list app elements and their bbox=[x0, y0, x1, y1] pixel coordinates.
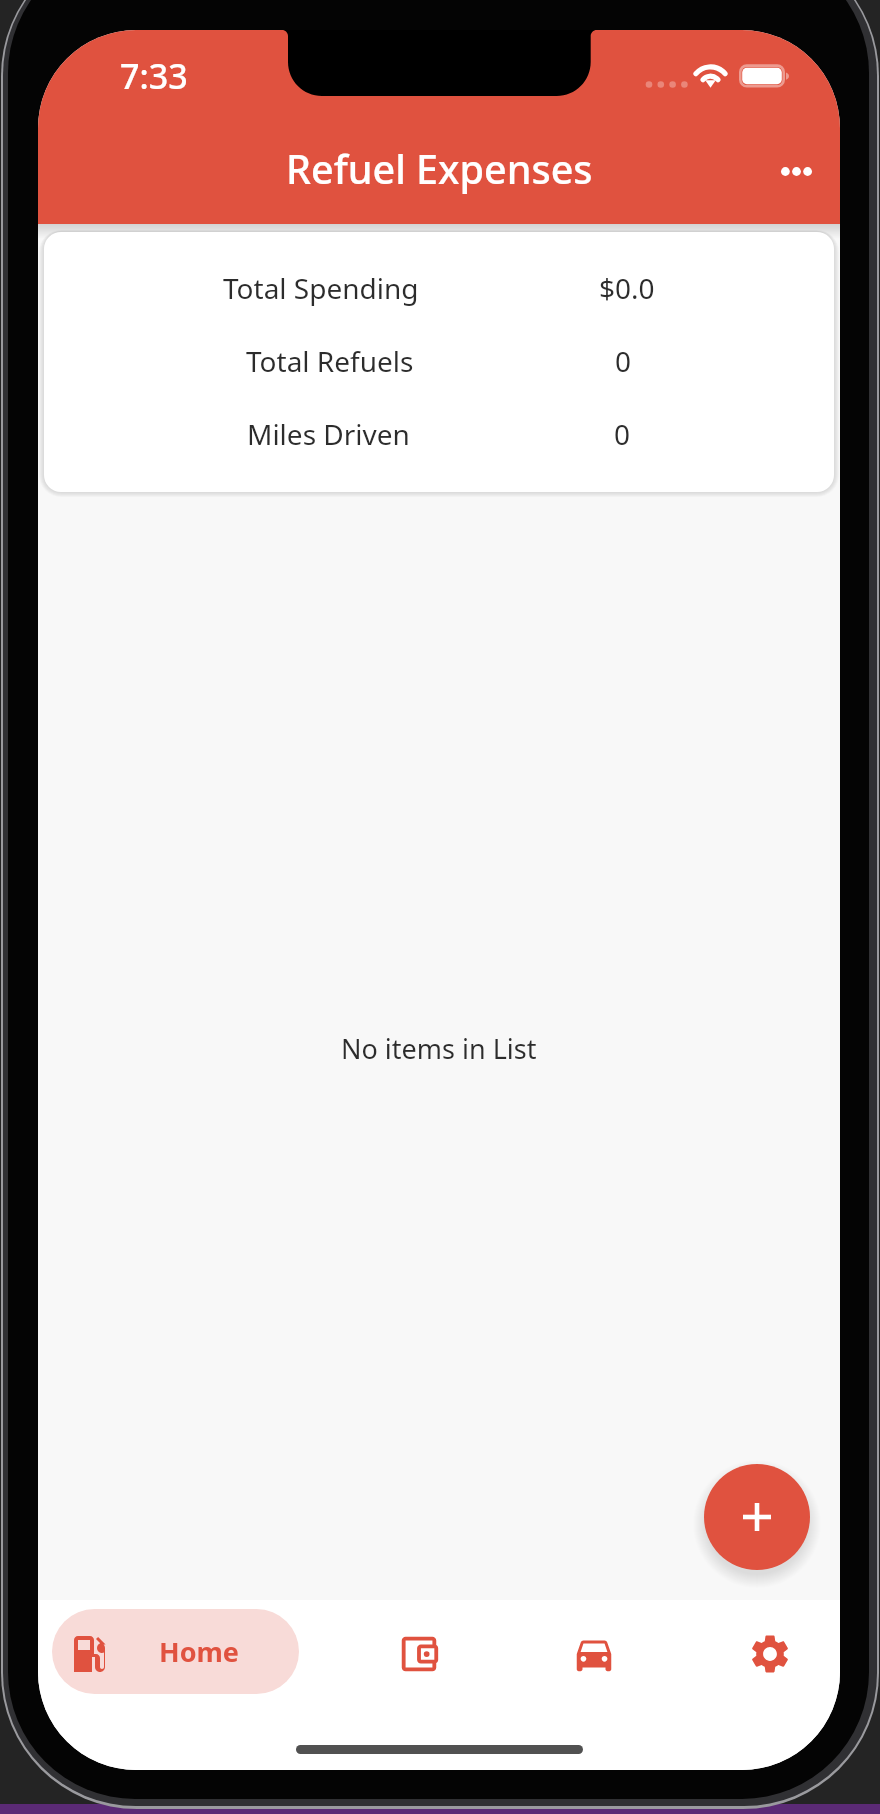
staticText: Total Refuels bbox=[246, 342, 414, 380]
staticText: 7:33 bbox=[120, 53, 188, 99]
button[interactable]: Home bbox=[52, 1609, 299, 1694]
staticText: No items in List bbox=[341, 1030, 537, 1067]
button[interactable]: More options bbox=[754, 129, 838, 213]
button[interactable]: Vehicles bbox=[537, 1609, 650, 1694]
staticText: 0 bbox=[615, 342, 632, 380]
staticText: Home bbox=[159, 1633, 239, 1670]
button[interactable]: Wallet bbox=[362, 1609, 475, 1694]
staticText: 0 bbox=[614, 415, 631, 453]
button[interactable]: Add refuel bbox=[704, 1464, 810, 1570]
staticText: $0.0 bbox=[599, 269, 655, 307]
staticText: Miles Driven bbox=[247, 415, 410, 453]
staticText: Refuel Expenses bbox=[286, 142, 593, 196]
button[interactable]: Settings bbox=[713, 1609, 826, 1694]
staticText: Total Spending bbox=[223, 269, 419, 307]
